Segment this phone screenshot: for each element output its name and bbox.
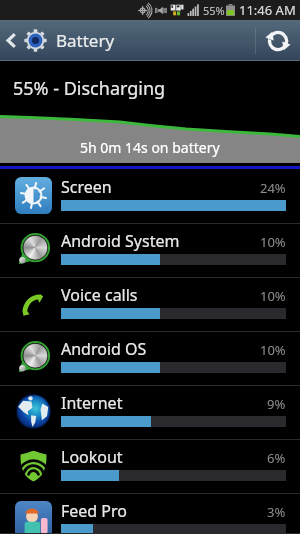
staticText: 6%	[267, 449, 286, 467]
other: Back	[6, 32, 17, 49]
button[interactable]: Internet	[0, 386, 300, 440]
button[interactable]: Android System	[0, 224, 300, 278]
button[interactable]: Android OS	[0, 332, 300, 386]
staticText: Internet	[61, 392, 123, 414]
staticText: Lookout	[61, 446, 123, 468]
button[interactable]: Screen	[0, 170, 300, 224]
button[interactable]: Voice calls	[0, 278, 300, 332]
staticText: Android System	[61, 230, 180, 252]
staticText: 10%	[260, 341, 286, 359]
staticText: 10%	[260, 287, 286, 305]
staticText: 3%	[267, 503, 286, 521]
staticText: 55%	[203, 3, 225, 18]
staticText: 5h 0m 14s on battery	[80, 138, 220, 157]
staticText: Battery	[56, 29, 115, 52]
staticText: 11:46 AM	[239, 1, 296, 19]
staticText: Voice calls	[61, 284, 138, 306]
staticText: 9%	[267, 395, 286, 413]
staticText: Feed Pro	[61, 500, 128, 522]
staticText: Android OS	[61, 338, 147, 360]
button[interactable]: Feed Pro	[0, 494, 300, 534]
staticText: 55% - Discharging	[13, 76, 166, 101]
staticText: 24%	[260, 179, 286, 197]
button[interactable]: Back	[0, 20, 115, 61]
button[interactable]: Lookout	[0, 440, 300, 494]
button[interactable]: Refresh	[256, 20, 300, 61]
staticText: 10%	[260, 233, 286, 251]
staticText: Screen	[61, 176, 112, 198]
